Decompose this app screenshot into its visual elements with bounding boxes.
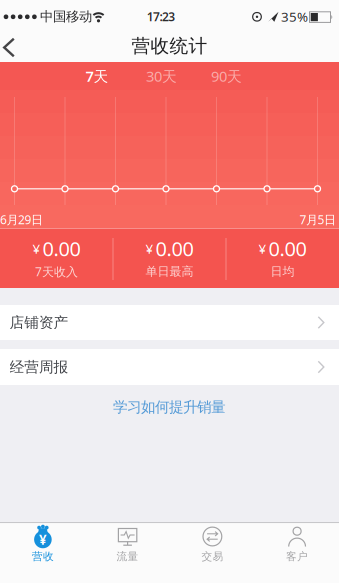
staticText: 6月29日 xyxy=(0,211,43,227)
staticText: ¥ xyxy=(258,240,266,257)
button[interactable]: 交易 xyxy=(170,523,254,583)
staticText: 经营周报 xyxy=(9,358,69,376)
button[interactable]: 流量 xyxy=(85,523,169,583)
button[interactable]: 经营周报 xyxy=(0,349,339,385)
staticText: ¥ xyxy=(39,531,47,548)
button[interactable]: 学习如何提升销量 xyxy=(113,398,226,416)
button[interactable]: 店铺资产 xyxy=(0,305,339,340)
staticText: 流量 xyxy=(117,550,139,563)
button[interactable]: 30天 xyxy=(133,62,189,90)
staticText: 营收 xyxy=(32,550,54,563)
staticText: 0.00 xyxy=(155,235,193,262)
staticText: 学习如何提升销量 xyxy=(113,398,226,416)
staticText: ¥ xyxy=(32,240,40,257)
button[interactable]: Back xyxy=(0,25,40,69)
button[interactable]: ¥ xyxy=(0,523,84,583)
staticText: 90天 xyxy=(211,66,242,86)
staticText: 7天收入 xyxy=(35,263,78,279)
button[interactable]: 7天 xyxy=(69,62,125,90)
staticText: 35% xyxy=(281,8,308,25)
staticText: 30天 xyxy=(146,66,177,86)
staticText: 7天 xyxy=(85,66,108,86)
staticText: 交易 xyxy=(201,550,223,563)
staticText: 营收统计 xyxy=(131,34,207,57)
staticText: 7月5日 xyxy=(299,211,336,227)
staticText: 中国移动 xyxy=(40,8,92,25)
staticText: 日均 xyxy=(270,264,294,279)
staticText: 单日最高 xyxy=(145,264,193,279)
staticText: 客户 xyxy=(286,550,308,563)
staticText: 17:23 xyxy=(147,8,175,24)
button[interactable]: 客户 xyxy=(255,523,339,583)
button[interactable]: 90天 xyxy=(198,62,254,90)
staticText: ¥ xyxy=(145,240,153,257)
staticText: 0.00 xyxy=(268,235,306,262)
staticText: 0.00 xyxy=(42,235,80,262)
staticText: 店铺资产 xyxy=(9,313,69,331)
